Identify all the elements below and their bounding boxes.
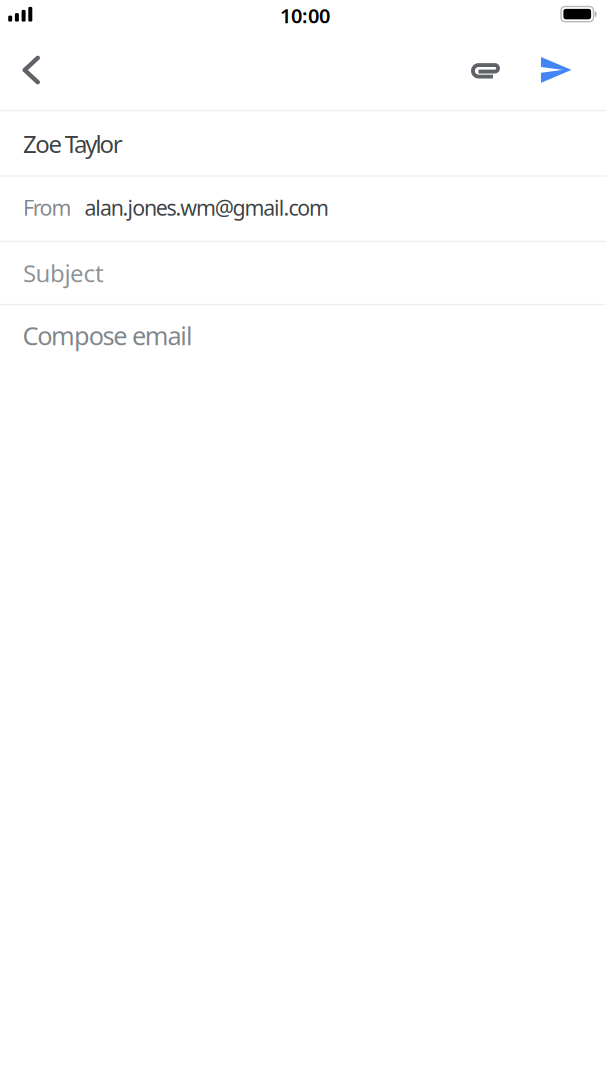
button[interactable]: Send — [530, 46, 582, 94]
button[interactable]: Back — [9, 42, 53, 98]
button[interactable]: Subject — [0, 242, 606, 303]
staticText: From — [23, 193, 71, 222]
staticText: Zoe Taylor — [23, 128, 123, 160]
button[interactable]: Attach file — [461, 47, 509, 95]
staticText: Subject — [23, 257, 104, 289]
button[interactable]: Compose email — [0, 303, 606, 367]
button[interactable]: Zoe Taylor — [0, 112, 606, 176]
staticText: 10:00 — [280, 2, 330, 29]
button[interactable]: From — [0, 175, 606, 239]
staticText: Compose email — [22, 319, 193, 352]
staticText: alan.jones.wm@gmail.com — [84, 193, 329, 222]
